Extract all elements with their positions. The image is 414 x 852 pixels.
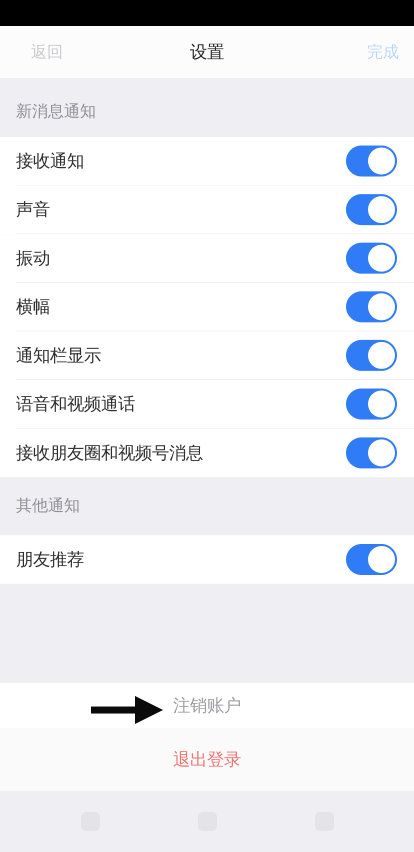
button[interactable]: 声音 — [0, 186, 414, 234]
staticText: 振动 — [16, 248, 50, 269]
staticText: 接收朋友圈和视频号消息 — [16, 442, 203, 464]
button[interactable]: 语音和视频通话 — [0, 380, 414, 429]
staticText: 退出登录 — [173, 749, 241, 770]
staticText: 返回 — [31, 42, 63, 62]
staticText: 通知栏显示 — [16, 345, 101, 366]
button[interactable]: 接收通知 — [0, 137, 414, 186]
button[interactable]: 注销账户 — [0, 683, 414, 728]
staticText: 注销账户 — [173, 695, 241, 716]
button[interactable]: 横幅 — [0, 283, 414, 331]
staticText: 完成 — [367, 42, 399, 62]
button[interactable]: 接收朋友圈和视频号消息 — [0, 429, 414, 477]
staticText: 横幅 — [16, 296, 50, 317]
staticText: 声音 — [16, 199, 50, 220]
button[interactable]: 朋友推荐 — [0, 535, 414, 584]
staticText: 新消息通知 — [16, 101, 96, 121]
staticText: 语音和视频通话 — [16, 393, 135, 415]
staticText: 朋友推荐 — [16, 549, 84, 570]
staticText: 设置 — [190, 41, 224, 63]
button[interactable]: 完成 — [352, 26, 414, 78]
staticText: 接收通知 — [16, 150, 84, 172]
button[interactable]: 振动 — [0, 234, 414, 283]
button[interactable]: 通知栏显示 — [0, 331, 414, 380]
button[interactable]: 退出登录 — [0, 728, 414, 791]
staticText: 其他通知 — [16, 495, 80, 515]
button[interactable]: 返回 — [0, 26, 78, 78]
